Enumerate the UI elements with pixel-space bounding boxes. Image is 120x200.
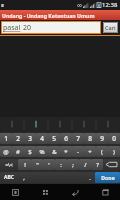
button[interactable]: space <box>29 172 84 183</box>
button[interactable]: % <box>36 146 48 157</box>
button[interactable]: pasal <box>1 21 101 34</box>
staticText: 4 <box>40 134 44 143</box>
staticText: 1 <box>4 134 8 143</box>
button[interactable] <box>0 117 24 132</box>
staticText: ABC <box>4 174 14 181</box>
staticText: ; <box>72 161 74 169</box>
button[interactable]: 8 <box>84 133 96 144</box>
button[interactable]: Backspace <box>103 159 120 170</box>
staticText: - <box>77 148 79 156</box>
staticText: % <box>39 148 45 156</box>
button[interactable]: ABC <box>0 172 18 183</box>
button[interactable]: 9 <box>96 133 108 144</box>
staticText: ! <box>24 161 26 169</box>
staticText: & <box>52 148 57 156</box>
staticText: 7 <box>76 134 80 143</box>
button[interactable]: 6 <box>60 133 72 144</box>
button[interactable]: + <box>84 146 96 157</box>
staticText: 20 <box>23 23 32 33</box>
button[interactable]: Back <box>60 184 90 200</box>
staticText: * <box>64 148 68 156</box>
button[interactable]: ( <box>96 146 108 157</box>
staticText: 5 <box>52 134 56 143</box>
button[interactable]: # <box>12 146 24 157</box>
button[interactable]: Apps <box>30 184 60 200</box>
staticText: + <box>88 148 92 156</box>
staticText: ? <box>96 161 99 169</box>
button[interactable] <box>24 117 48 132</box>
button[interactable]: Menu <box>0 184 30 200</box>
button[interactable]: 5 <box>48 133 60 144</box>
staticText: " <box>36 161 39 169</box>
button[interactable]: Done <box>95 172 120 183</box>
button[interactable]: * <box>60 146 72 157</box>
staticText: / <box>84 161 87 169</box>
staticText: 6 <box>64 134 68 143</box>
button[interactable]: ) <box>108 146 120 157</box>
button[interactable]: 4 <box>36 133 48 144</box>
button[interactable]: " <box>31 159 43 170</box>
button[interactable]: Cari <box>103 22 118 33</box>
staticText: 12:38 <box>102 1 118 9</box>
button[interactable]: Undang - Undang Ketentuan Umum Perpajaka… <box>0 10 120 20</box>
button[interactable]: / <box>79 159 91 170</box>
button[interactable]: - <box>72 146 84 157</box>
staticText: . <box>89 174 91 182</box>
staticText: , <box>23 174 25 182</box>
staticText: : <box>60 161 62 169</box>
button[interactable]: . <box>84 172 95 183</box>
staticText: 0 <box>112 134 116 143</box>
staticText: # <box>16 148 20 156</box>
staticText: Done <box>101 174 115 181</box>
staticText: pasal <box>3 23 21 33</box>
button[interactable] <box>48 117 72 132</box>
staticText: 8 <box>88 134 92 143</box>
staticText: 2 <box>16 134 20 143</box>
staticText: @ <box>3 148 9 156</box>
button[interactable]: 0 <box>108 133 120 144</box>
button[interactable]: @ <box>0 146 12 157</box>
button[interactable]: ? <box>91 159 103 170</box>
button[interactable]: 2 <box>12 133 24 144</box>
button[interactable]: 3 <box>24 133 36 144</box>
button[interactable]: =\< <box>0 159 18 170</box>
button[interactable]: ; <box>67 159 79 170</box>
button[interactable]: ' <box>43 159 55 170</box>
staticText: =\< <box>5 162 13 168</box>
button[interactable]: $ <box>24 146 36 157</box>
button[interactable]: 7 <box>72 133 84 144</box>
staticText: Undang - Undang Ketentuan Umum Perpajaka… <box>2 12 118 19</box>
button[interactable]: ! <box>18 159 31 170</box>
button[interactable]: , <box>18 172 29 183</box>
button[interactable]: : <box>55 159 67 170</box>
button[interactable]: & <box>48 146 60 157</box>
staticText: ) <box>113 148 115 156</box>
button[interactable]: 1 <box>0 133 12 144</box>
staticText: Cari <box>105 24 116 31</box>
button[interactable]: Recents <box>90 184 120 200</box>
button[interactable] <box>96 117 120 132</box>
staticText: 9 <box>100 134 104 143</box>
staticText: $ <box>28 148 32 156</box>
staticText: 3 <box>28 134 32 143</box>
button[interactable] <box>72 117 96 132</box>
staticText: ( <box>101 148 103 156</box>
staticText: ' <box>48 161 50 169</box>
